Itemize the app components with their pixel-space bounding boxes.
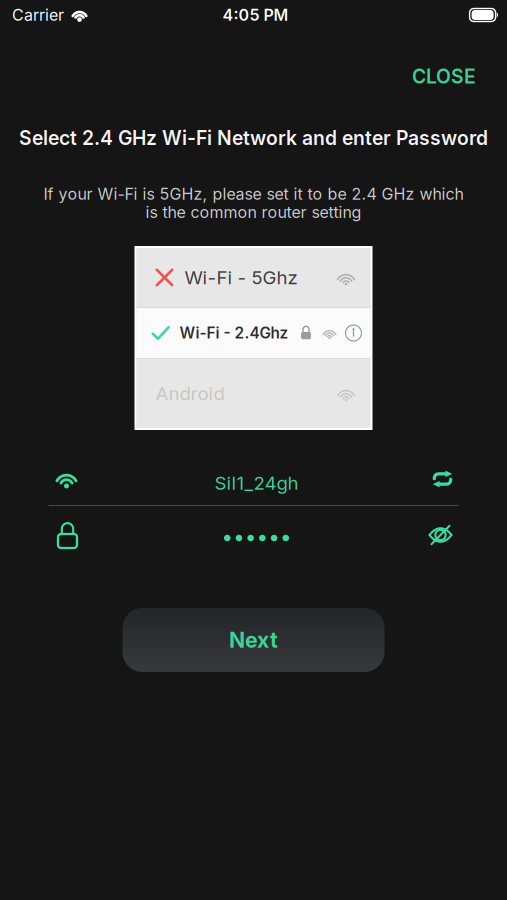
staticText: Carrier — [12, 5, 64, 25]
staticText: Android — [155, 382, 224, 405]
staticText: CLOSE — [412, 65, 476, 88]
staticText: Next — [229, 627, 278, 653]
staticText: Wi-Fi - 2.4Ghz — [179, 324, 288, 342]
staticText: If your Wi-Fi is 5GHz, please set it to … — [43, 184, 463, 203]
button[interactable]: Next — [122, 608, 384, 672]
staticText: 4:05 PM — [222, 5, 288, 25]
button[interactable]: Refresh network list — [420, 463, 458, 503]
staticText: Select 2.4 GHz Wi-Fi Network and enter P… — [19, 126, 488, 150]
staticText: Wi-Fi - 5Ghz — [184, 266, 297, 289]
staticText: is the common router setting — [145, 202, 361, 222]
staticText: Sil1_24gh — [214, 472, 298, 494]
button[interactable]: CLOSE — [395, 52, 507, 101]
button[interactable]: Show password — [420, 510, 458, 554]
